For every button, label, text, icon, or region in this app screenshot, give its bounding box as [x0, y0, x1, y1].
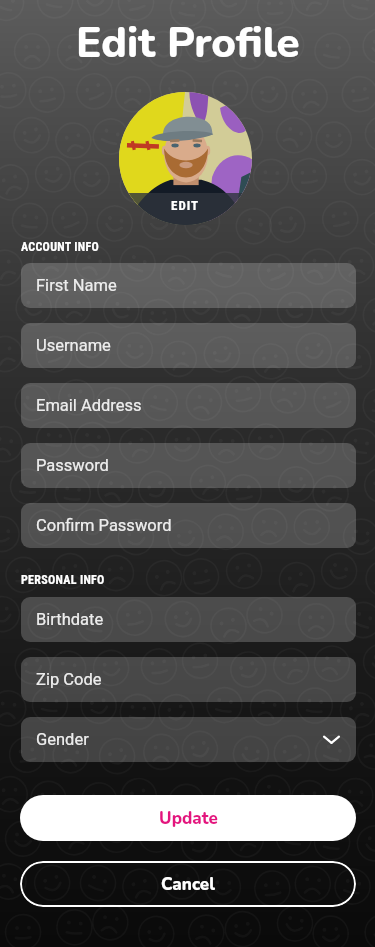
- staticText: Edit Profile: [76, 15, 300, 72]
- button[interactable]: First Name: [21, 263, 356, 308]
- staticText: First Name: [36, 276, 117, 295]
- staticText: Confirm Password: [36, 516, 172, 535]
- button[interactable]: Gender: [21, 717, 356, 762]
- staticText: Cancel: [161, 873, 215, 896]
- staticText: Birthdate: [36, 610, 104, 629]
- button[interactable]: Username: [21, 323, 356, 368]
- staticText: EDIT: [171, 198, 200, 213]
- button[interactable]: Update: [20, 795, 356, 841]
- staticText: PERSONAL INFO: [21, 573, 105, 587]
- button[interactable]: Email Address: [21, 383, 356, 428]
- button[interactable]: Cancel: [20, 861, 356, 907]
- button[interactable]: Confirm Password: [21, 503, 356, 548]
- staticText: Email Address: [36, 396, 142, 415]
- button[interactable]: Password: [21, 443, 356, 488]
- staticText: ACCOUNT INFO: [21, 240, 100, 254]
- button[interactable]: Zip Code: [21, 657, 356, 702]
- staticText: Username: [36, 336, 111, 355]
- button[interactable]: Birthdate: [21, 597, 356, 642]
- staticText: Gender: [36, 730, 89, 749]
- staticText: Update: [159, 807, 218, 830]
- button[interactable]: Edit profile photo: [119, 92, 252, 225]
- staticText: Zip Code: [36, 670, 102, 689]
- staticText: Password: [36, 456, 109, 475]
